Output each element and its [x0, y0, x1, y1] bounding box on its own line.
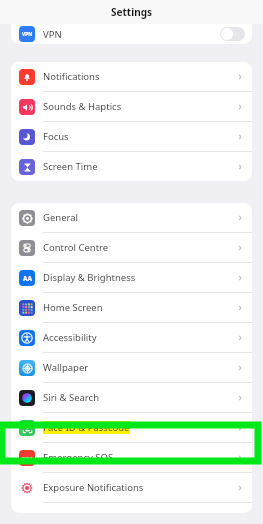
- button[interactable]: Home Screen: [11, 293, 252, 322]
- button[interactable]: Siri & Search: [11, 383, 252, 412]
- button[interactable]: Notifications: [11, 62, 252, 91]
- button[interactable]: SOS: [11, 443, 252, 472]
- staticText: Settings: [111, 5, 152, 19]
- staticText: Exposure Notifications: [43, 481, 144, 494]
- button[interactable]: Exposure Notifications: [11, 473, 252, 502]
- staticText: Sounds & Haptics: [43, 100, 122, 113]
- staticText: General: [43, 211, 79, 224]
- staticText: Home Screen: [43, 301, 103, 314]
- button[interactable]: Focus: [11, 122, 252, 151]
- staticText: Focus: [43, 130, 69, 143]
- button[interactable]: General: [11, 203, 252, 232]
- button[interactable]: AA: [11, 263, 252, 292]
- button[interactable]: Control Centre: [11, 233, 252, 262]
- button[interactable]: VPN toggle: [220, 27, 245, 41]
- staticText: VPN: [22, 31, 33, 38]
- staticText: Display & Brightness: [43, 271, 136, 284]
- staticText: Control Centre: [43, 241, 109, 254]
- staticText: Emergency SOS: [43, 451, 114, 464]
- staticText: Notifications: [43, 70, 100, 83]
- button[interactable]: Wallpaper: [11, 353, 252, 382]
- staticText: Wallpaper: [43, 361, 89, 374]
- staticText: Siri & Search: [43, 391, 100, 404]
- staticText: Screen Time: [43, 160, 98, 173]
- button[interactable]: Accessibility: [11, 323, 252, 352]
- staticText: Accessibility: [43, 331, 97, 344]
- button[interactable]: Screen Time: [11, 152, 252, 181]
- button[interactable]: Sounds & Haptics: [11, 92, 252, 121]
- staticText: AA: [23, 274, 32, 283]
- staticText: SOS: [22, 455, 33, 462]
- button[interactable]: Face ID & Passcode: [11, 413, 252, 442]
- button[interactable]: VPN: [11, 24, 252, 44]
- staticText: VPN: [43, 28, 62, 41]
- staticText: Face ID & Passcode: [43, 421, 130, 434]
